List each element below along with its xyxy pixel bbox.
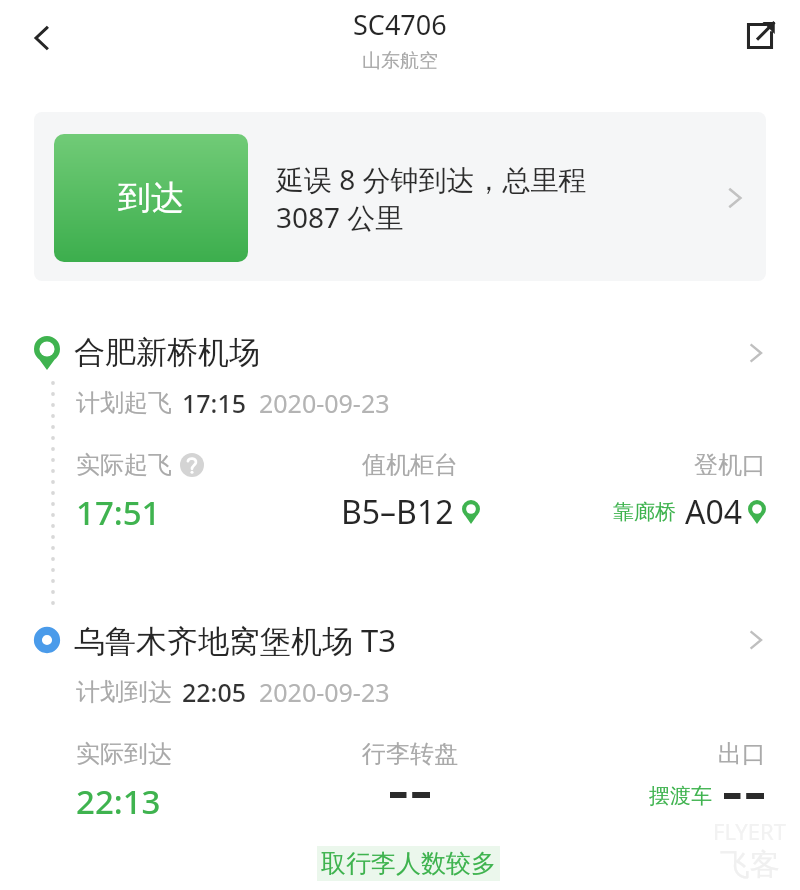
staticText: 乌鲁木齐地窝堡机场 T3 — [74, 619, 397, 661]
staticText: 2020-09-23 — [259, 675, 390, 709]
staticText: 到达 — [118, 177, 184, 219]
button[interactable]: 到达 — [34, 112, 766, 281]
staticText: 实际起飞 — [76, 450, 172, 480]
button[interactable]: B5–B12 — [341, 490, 480, 534]
staticText: B5–B12 — [341, 490, 454, 534]
staticText: 飞客 — [720, 846, 780, 884]
button[interactable]: 乌鲁木齐地窝堡机场 T3 — [0, 619, 800, 661]
staticText: 计划起飞 — [76, 388, 172, 418]
staticText: A04 — [685, 490, 743, 534]
button[interactable]: Back — [12, 8, 72, 68]
staticText: 值机柜台 — [362, 450, 458, 480]
staticText: 行李转盘 — [362, 739, 458, 769]
staticText: FLYERT — [713, 816, 786, 846]
button[interactable]: Share — [730, 6, 790, 66]
staticText: 22:13 — [76, 779, 161, 824]
staticText: 3087 公里 — [276, 198, 404, 236]
staticText: 摆渡车 — [649, 783, 712, 809]
button[interactable]: 靠廊桥 — [613, 490, 766, 534]
staticText: 计划到达 — [76, 677, 172, 707]
button[interactable]: 帮助 — [180, 453, 204, 477]
staticText: 靠廊桥 — [613, 499, 676, 525]
staticText: 合肥新桥机场 — [74, 333, 260, 372]
staticText: 22:05 — [182, 675, 247, 709]
button[interactable]: 合肥新桥机场 — [0, 333, 800, 372]
staticText: 登机口 — [694, 450, 766, 480]
staticText: 取行李人数较多 — [321, 848, 496, 879]
staticText: 17:51 — [76, 490, 161, 535]
staticText: 山东航空 — [362, 49, 438, 73]
staticText: 2020-09-23 — [259, 386, 390, 420]
staticText: 延误 8 分钟到达，总里程 — [276, 160, 587, 198]
staticText: 出口 — [718, 739, 766, 769]
staticText: 实际到达 — [76, 739, 172, 769]
staticText: SC4706 — [353, 6, 447, 43]
staticText: 17:15 — [182, 386, 247, 420]
